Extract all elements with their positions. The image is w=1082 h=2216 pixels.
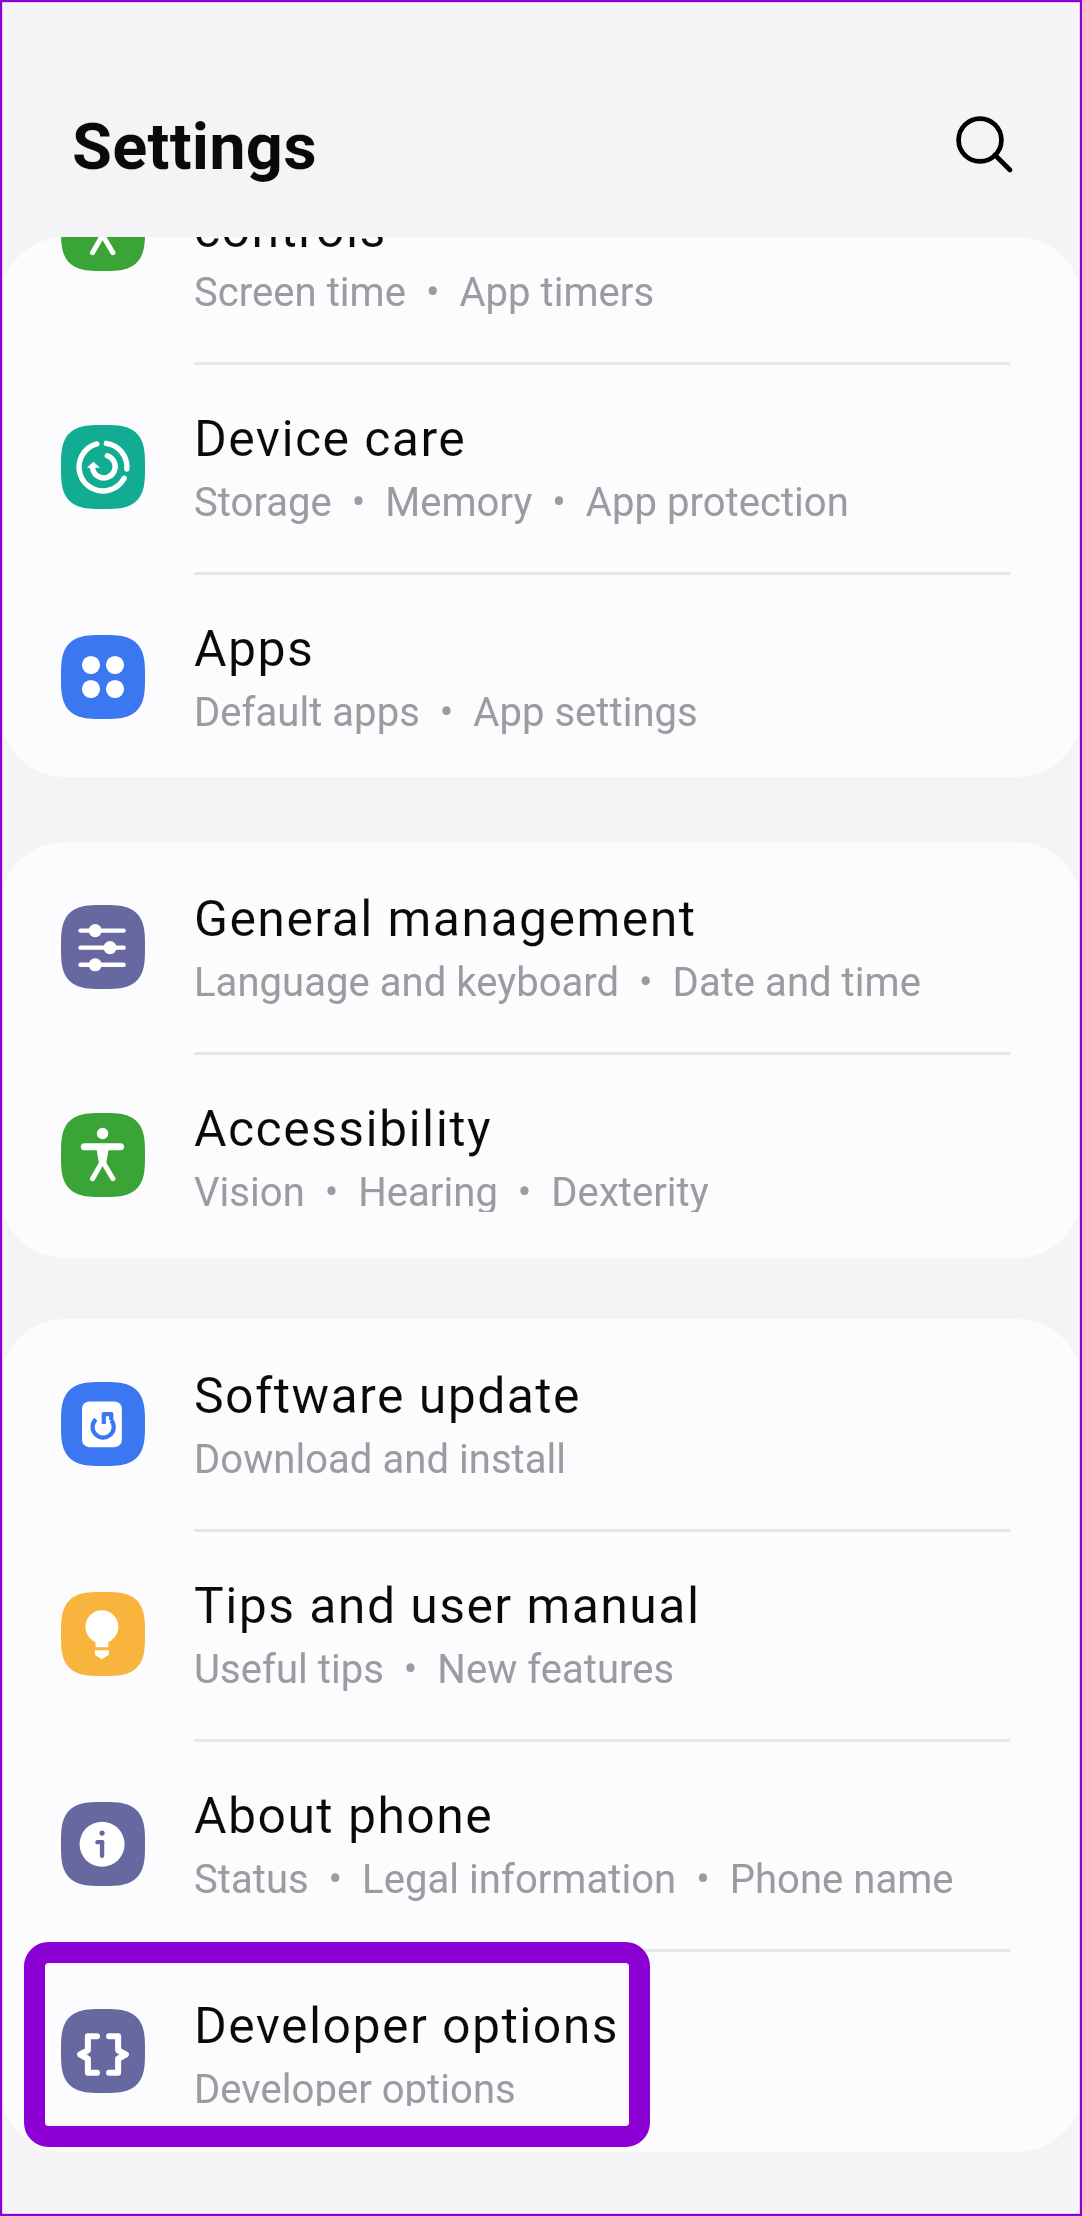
staticText: About phone	[194, 1787, 494, 1846]
button[interactable]: Device care	[0, 362, 1082, 572]
staticText: Device care	[194, 410, 467, 469]
staticText: Accessibility	[194, 1100, 493, 1159]
button[interactable]: Apps	[0, 572, 1082, 777]
staticText: Tips and user manual	[194, 1577, 701, 1636]
staticText: Status • Legal information • Phone name	[194, 1856, 954, 1903]
staticText: Useful tips • New features	[194, 1646, 675, 1693]
staticText: Software update	[194, 1367, 582, 1426]
button[interactable]: Accessibility	[0, 1052, 1082, 1258]
button[interactable]: Digital Wellbeing and parental controls	[0, 237, 1082, 362]
staticText: General management	[194, 890, 697, 949]
staticText: Digital Wellbeing and parental controls	[194, 237, 896, 259]
staticText: Storage • Memory • App protection	[194, 479, 849, 526]
staticText: Download and install	[194, 1436, 567, 1483]
staticText: Language and keyboard • Date and time	[194, 959, 921, 1006]
button[interactable]: Software update	[0, 1319, 1082, 1529]
staticText: Apps	[194, 620, 315, 679]
staticText: Vision • Hearing • Dexterity	[194, 1169, 709, 1212]
button[interactable]: About phone	[0, 1739, 1082, 1949]
button[interactable]: General management	[0, 842, 1082, 1052]
staticText: Developer options	[194, 1997, 619, 2056]
button[interactable]: Search	[934, 94, 1026, 186]
staticText: Developer options	[194, 2066, 516, 2106]
staticText: Default apps • App settings	[194, 689, 698, 736]
button[interactable]: Tips and user manual	[0, 1529, 1082, 1739]
staticText: Screen time • App timers	[194, 269, 655, 316]
staticText: Settings	[72, 109, 317, 185]
button[interactable]: Developer options	[0, 1949, 1082, 2152]
